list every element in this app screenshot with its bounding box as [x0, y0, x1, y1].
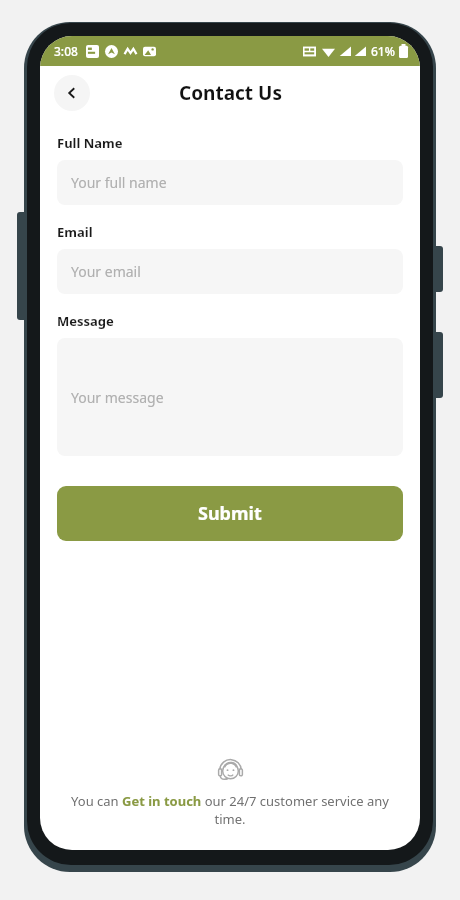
staticText: Your email	[71, 262, 141, 281]
button[interactable]: Back	[54, 75, 90, 111]
staticText: Full Name	[57, 134, 123, 152]
button[interactable]: Customer support	[60, 758, 400, 828]
button[interactable]: Your message	[57, 338, 403, 456]
staticText: Contact Us	[179, 80, 282, 106]
staticText: Your full name	[71, 173, 167, 192]
staticText: You can Get in touch our 24/7 customer s…	[60, 792, 400, 828]
other: Customer support	[217, 758, 244, 785]
button[interactable]: Your email	[57, 249, 403, 294]
button[interactable]: Your full name	[57, 160, 403, 205]
staticText: Submit	[198, 501, 262, 526]
staticText: Your message	[71, 388, 164, 407]
staticText: 61%	[371, 43, 395, 59]
staticText: Message	[57, 312, 114, 330]
button[interactable]: Submit	[57, 486, 403, 541]
staticText: Email	[57, 223, 93, 241]
staticText: 3:08	[54, 43, 78, 59]
